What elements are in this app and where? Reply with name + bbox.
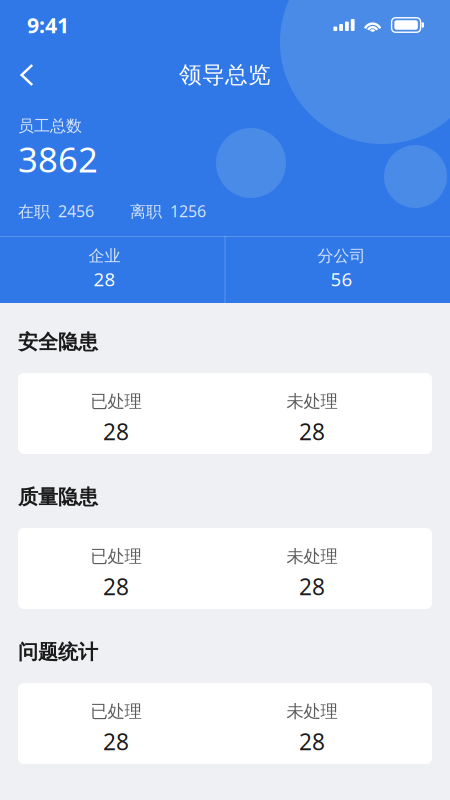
staticText: 企业	[88, 246, 120, 266]
staticText: 28	[299, 571, 325, 601]
staticText: 已处理	[90, 391, 141, 412]
staticText: 56	[330, 267, 352, 291]
staticText: 3862	[18, 136, 98, 182]
button[interactable]: 已处理	[18, 702, 214, 752]
button[interactable]: 分公司	[225, 236, 450, 303]
button[interactable]: 已处理	[18, 547, 214, 597]
button[interactable]: 未处理	[214, 547, 410, 597]
staticText: 在职 2456	[18, 200, 94, 222]
staticText: 分公司	[317, 246, 365, 266]
staticText: 28	[103, 416, 129, 446]
staticText: 未处理	[286, 546, 337, 567]
staticText: 员工总数	[18, 116, 82, 136]
staticText: 未处理	[286, 701, 337, 722]
staticText: 领导总览	[179, 61, 271, 89]
button[interactable]: 企业	[0, 236, 225, 303]
staticText: 质量隐患	[18, 485, 98, 509]
staticText: 28	[103, 571, 129, 601]
button[interactable]: 已处理	[18, 392, 214, 442]
staticText: 28	[93, 267, 115, 291]
staticText: 28	[299, 416, 325, 446]
button[interactable]: 未处理	[214, 392, 410, 442]
staticText: 未处理	[286, 391, 337, 412]
staticText: 安全隐患	[18, 330, 98, 354]
button[interactable]: 未处理	[214, 702, 410, 752]
button[interactable]: Back	[5, 53, 49, 97]
staticText: 问题统计	[18, 640, 98, 664]
staticText: 28	[103, 726, 129, 756]
staticText: 已处理	[90, 546, 141, 567]
staticText: 28	[299, 726, 325, 756]
staticText: 9:41	[27, 11, 69, 39]
staticText: 已处理	[90, 701, 141, 722]
staticText: 离职 1256	[130, 200, 206, 222]
